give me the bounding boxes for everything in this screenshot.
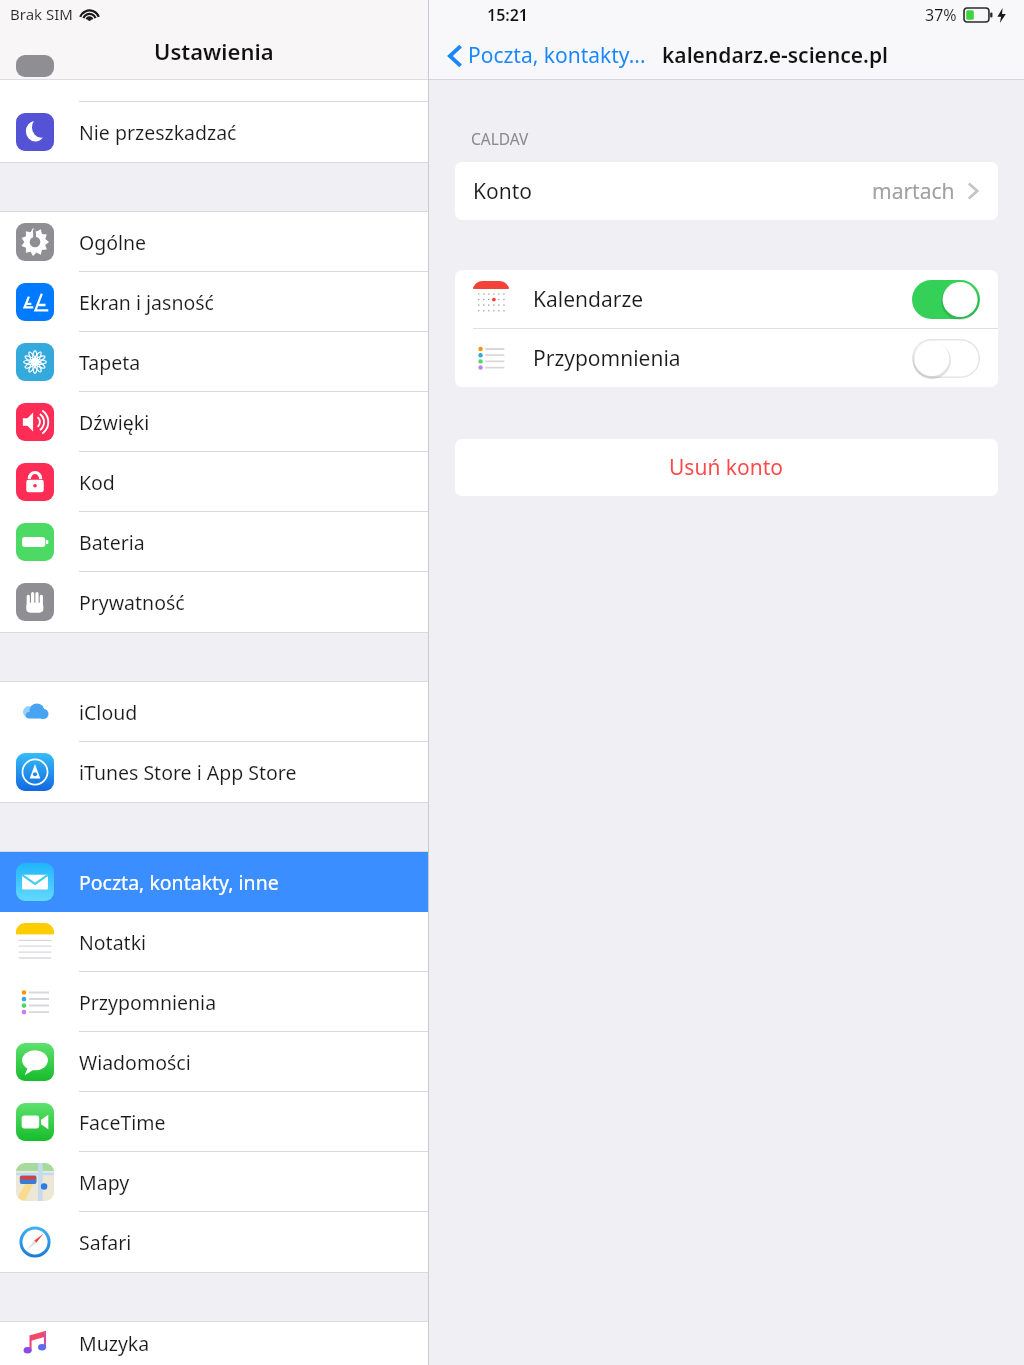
button[interactable]: Ogólne (0, 212, 428, 272)
staticText: 15:21 (487, 4, 529, 26)
button[interactable]: iTunes Store i App Store (0, 742, 428, 802)
button[interactable]: Dźwięki (0, 392, 428, 452)
button[interactable]: Przełącznik wyłączony (912, 339, 980, 378)
staticText: Ekran i jasność (79, 289, 214, 316)
staticText: iCloud (79, 699, 138, 726)
staticText: Wiadomości (79, 1049, 191, 1076)
staticText: kalendarz.e-science.pl (662, 41, 889, 70)
button[interactable]: Przełącznik włączony (912, 280, 980, 319)
staticText: Poczta, kontakty, inne (79, 869, 279, 896)
staticText: martach (872, 177, 955, 206)
staticText: iTunes Store i App Store (79, 759, 297, 786)
button[interactable]: Wiadomości (0, 1032, 428, 1092)
button[interactable]: Poczta, kontakty... (443, 41, 650, 70)
button[interactable]: Przypomnienia (0, 972, 428, 1032)
staticText: Ustawienia (154, 36, 274, 66)
staticText: Przypomnienia (79, 989, 217, 1016)
staticText: 37% (925, 4, 957, 26)
staticText: Przypomnienia (533, 344, 681, 373)
button[interactable]: Prywatność (0, 572, 428, 632)
button[interactable]: Notatki (0, 912, 428, 972)
button[interactable]: Bateria (0, 512, 428, 572)
button[interactable]: Poczta, kontakty, inne (0, 852, 428, 912)
staticText: Usuń konto (669, 453, 784, 482)
staticText: CALDAV (471, 128, 529, 149)
staticText: Dźwięki (79, 409, 150, 436)
button[interactable]: Usuń konto (455, 439, 998, 496)
staticText: Ogólne (79, 229, 147, 256)
button[interactable]: Mapy (0, 1152, 428, 1212)
staticText: Bateria (79, 529, 145, 556)
button[interactable]: Kod (0, 452, 428, 512)
button[interactable]: Safari (0, 1212, 428, 1272)
staticText: Konto (473, 177, 532, 206)
button[interactable]: Ekran i jasność (0, 272, 428, 332)
staticText: Poczta, kontakty... (468, 41, 646, 70)
staticText: FaceTime (79, 1109, 166, 1136)
staticText: Kod (79, 469, 115, 496)
button[interactable]: FaceTime (0, 1092, 428, 1152)
button[interactable]: Przypomnienia (455, 329, 998, 387)
staticText: Nie przeszkadzać (79, 119, 237, 146)
staticText: Mapy (79, 1169, 130, 1196)
button[interactable]: Kalendarze (455, 270, 998, 328)
staticText: Notatki (79, 929, 147, 956)
staticText: Kalendarze (533, 285, 644, 314)
button[interactable]: Nie przeszkadzać (0, 102, 428, 162)
staticText: Brak SIM (10, 4, 73, 24)
button[interactable]: Konto (455, 162, 998, 220)
staticText: Muzyka (79, 1330, 150, 1357)
staticText: Prywatność (79, 589, 185, 616)
staticText: Tapeta (79, 349, 141, 376)
staticText: Safari (79, 1229, 132, 1256)
button[interactable]: Tapeta (0, 332, 428, 392)
button[interactable]: Muzyka (0, 1322, 428, 1365)
button[interactable]: iCloud (0, 682, 428, 742)
